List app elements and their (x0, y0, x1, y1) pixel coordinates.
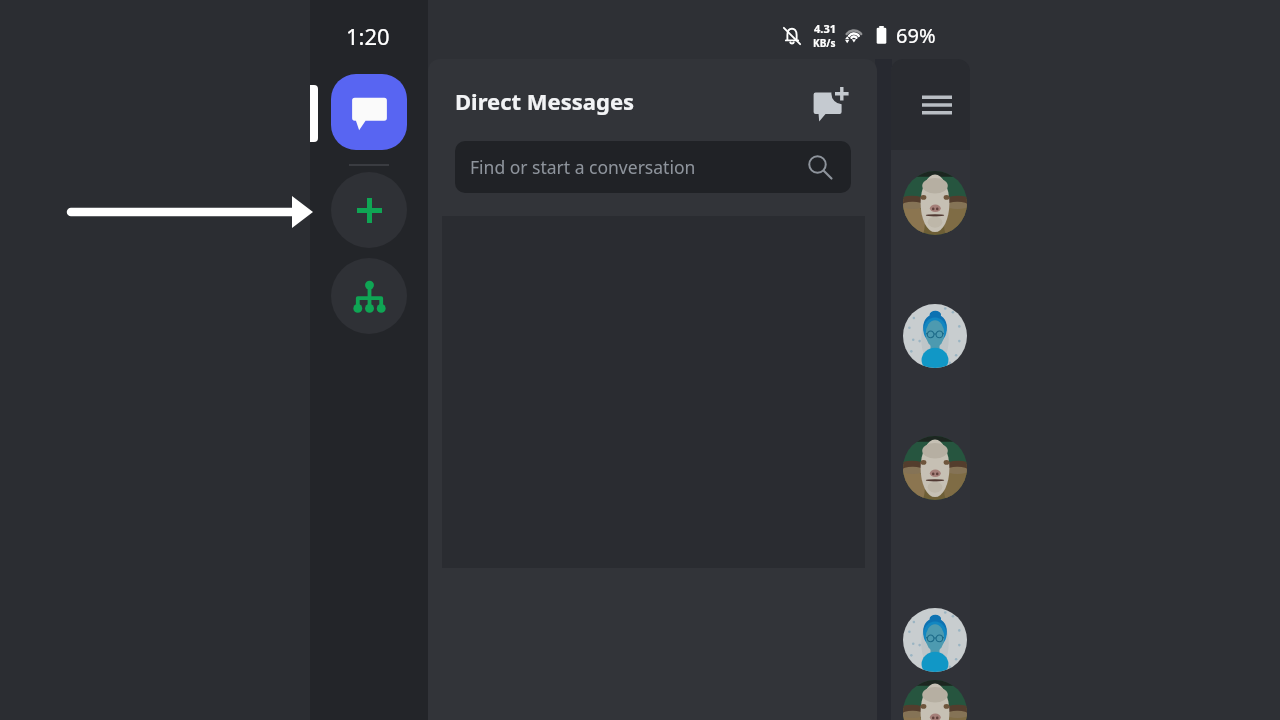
button[interactable]: Explore Public Servers (331, 258, 407, 334)
staticText: Find or start a conversation (470, 155, 696, 179)
button[interactable]: Menu (891, 59, 970, 150)
button[interactable]: Conversation 2 (903, 304, 967, 368)
button[interactable]: Conversation 1 (903, 171, 967, 235)
button[interactable]: Find or start a conversation (455, 141, 851, 193)
button[interactable]: Direct Messages (331, 74, 407, 150)
button[interactable]: Conversation 4 (903, 608, 967, 672)
staticText: 1:20 (346, 21, 390, 51)
button[interactable]: Conversation 5 (903, 680, 967, 720)
button[interactable]: New message (810, 82, 854, 126)
button[interactable]: Conversation 3 (903, 436, 967, 500)
staticText: KB/s (813, 36, 836, 50)
staticText: 4.31 (814, 21, 836, 36)
staticText: Direct Messages (455, 86, 635, 116)
button[interactable]: Add a Server (331, 172, 407, 248)
staticText: 69% (896, 22, 936, 49)
